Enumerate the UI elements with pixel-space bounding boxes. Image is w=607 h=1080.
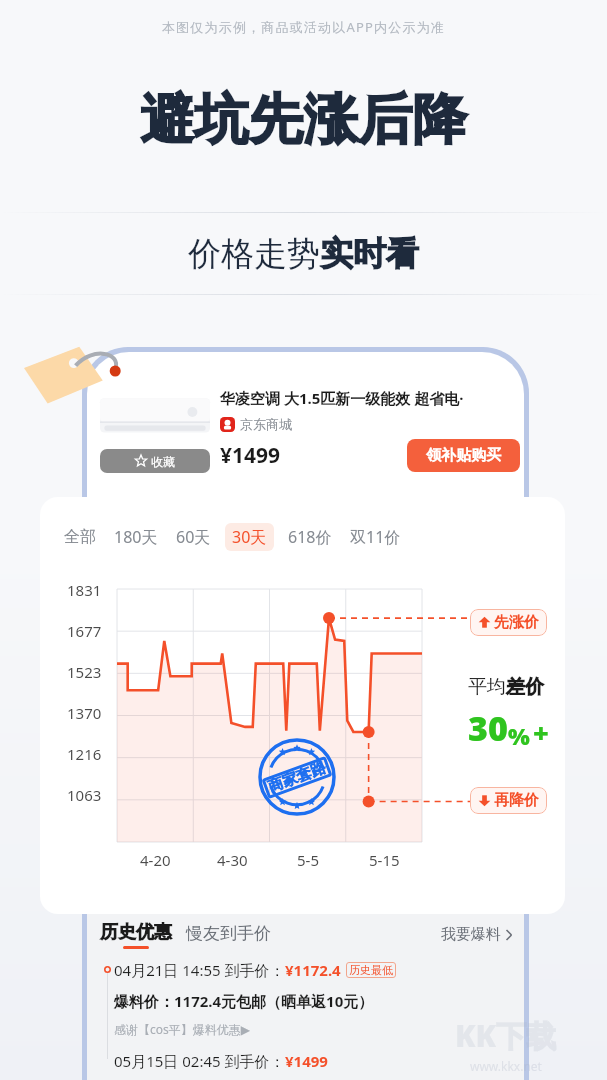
- staticText: 收藏: [151, 454, 175, 469]
- staticText: 1831: [67, 580, 102, 600]
- staticText: 30: [468, 705, 508, 751]
- button[interactable]: 全部: [64, 524, 96, 550]
- button[interactable]: 我要爆料: [441, 925, 514, 944]
- staticText: ¥1499: [285, 1051, 328, 1071]
- button[interactable]: 领补贴购买: [407, 439, 520, 472]
- staticText: www.kkx.net: [470, 1058, 542, 1074]
- staticText: 4-20: [140, 850, 171, 870]
- staticText: 60天: [176, 526, 211, 548]
- staticText: 本图仅为示例，商品或活动以APP内公示为准: [0, 18, 607, 36]
- staticText: 618价: [288, 526, 332, 548]
- staticText: KK下载: [455, 1015, 557, 1056]
- button[interactable]: 180天: [114, 523, 158, 551]
- staticText: 1370: [67, 703, 102, 723]
- staticText: 1523: [67, 662, 102, 682]
- button[interactable]: 60天: [176, 523, 211, 551]
- button[interactable]: 双11价: [350, 523, 401, 551]
- staticText: 实时看: [320, 233, 419, 275]
- staticText: 再降价: [494, 791, 539, 810]
- staticText: 感谢【cos平】爆料优惠▶: [114, 1021, 250, 1037]
- staticText: 华凌空调 大1.5匹新一级能效 超省电·: [220, 388, 464, 408]
- staticText: 慢友到手价: [186, 923, 271, 944]
- staticText: 平均: [468, 675, 506, 699]
- staticText: 差价: [506, 675, 544, 699]
- staticText: 04月21日 14:55 到手价：: [114, 960, 285, 980]
- staticText: 180天: [114, 526, 158, 548]
- button[interactable]: 先涨价: [470, 609, 547, 636]
- staticText: 先涨价: [494, 613, 539, 632]
- button[interactable]: 再降价: [470, 787, 547, 814]
- staticText: 历史最低: [349, 963, 393, 977]
- staticText: 5-15: [369, 850, 400, 870]
- button[interactable]: 收藏: [100, 449, 210, 473]
- staticText: 价格走势: [188, 233, 320, 275]
- staticText: 05月15日 02:45 到手价：: [114, 1051, 285, 1071]
- staticText: 京东商城: [240, 416, 292, 432]
- staticText: %: [508, 720, 530, 751]
- staticText: 1677: [67, 621, 102, 641]
- button[interactable]: 慢友到手价: [186, 923, 271, 944]
- staticText: 爆料价：1172.4元包邮（晒单返10元）: [114, 991, 374, 1011]
- staticText: ¥1172.4: [285, 960, 341, 980]
- staticText: +: [533, 714, 549, 751]
- staticText: 商家套路: [266, 758, 328, 797]
- button[interactable]: 历史优惠: [100, 921, 172, 949]
- button[interactable]: 618价: [288, 523, 332, 551]
- staticText: 领补贴购买: [426, 446, 501, 465]
- staticText: 双11价: [350, 526, 401, 548]
- button[interactable]: 30天: [225, 523, 274, 551]
- staticText: 全部: [64, 527, 96, 547]
- staticText: ¥1499: [220, 441, 281, 470]
- staticText: 4-30: [217, 850, 248, 870]
- staticText: 我要爆料: [441, 925, 501, 944]
- staticText: 1063: [67, 785, 102, 805]
- staticText: 历史优惠: [100, 921, 172, 944]
- staticText: 避坑先涨后降: [0, 86, 607, 154]
- staticText: 30天: [232, 526, 267, 548]
- staticText: 5-5: [297, 850, 319, 870]
- staticText: 1216: [67, 744, 102, 764]
